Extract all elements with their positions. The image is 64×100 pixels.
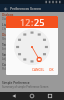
button[interactable]: Seek Bar bbox=[0, 52, 64, 62]
button[interactable]: CANCEL bbox=[30, 68, 47, 72]
staticText: : bbox=[31, 16, 34, 28]
button[interactable]: Dialogs bbox=[0, 12, 64, 22]
button[interactable]: Dialog Header bbox=[0, 32, 64, 42]
staticText: Dialogs bbox=[2, 13, 14, 17]
staticText: CANCEL bbox=[32, 68, 45, 72]
staticText: Color Picker bbox=[2, 63, 21, 67]
staticText: Simple Preference bbox=[2, 81, 30, 85]
staticText: Enter some text bbox=[2, 47, 22, 51]
staticText: OK bbox=[49, 68, 54, 72]
button[interactable]: OK bbox=[47, 68, 56, 72]
staticText: 12 bbox=[20, 16, 31, 28]
button[interactable]: Text Preference bbox=[0, 42, 64, 52]
button[interactable]: Home bbox=[28, 92, 36, 100]
staticText: Text Preference bbox=[2, 43, 26, 47]
staticText: Dialog Header bbox=[2, 33, 24, 37]
staticText: List Preference bbox=[2, 23, 25, 27]
staticText: Shows a header bbox=[2, 37, 22, 41]
button[interactable]: Simple Preference bbox=[0, 80, 64, 90]
button[interactable]: List Preference bbox=[0, 22, 64, 32]
staticText: 25 bbox=[34, 16, 45, 28]
staticText: Summary of simple Preference Screen bbox=[2, 85, 49, 89]
button[interactable]: Color Picker bbox=[0, 62, 64, 72]
button[interactable]: Back bbox=[10, 92, 18, 100]
button[interactable]: Navigate up bbox=[2, 5, 9, 12]
staticText: Adjust the value bbox=[2, 57, 22, 61]
button[interactable]: 12 bbox=[20, 16, 31, 28]
staticText: Dialog preferences bbox=[2, 17, 25, 21]
staticText: Seek Bar bbox=[2, 53, 16, 57]
staticText: Choose an item bbox=[2, 27, 21, 31]
button[interactable]: 25 bbox=[34, 16, 45, 28]
button[interactable]: Recents bbox=[46, 92, 54, 100]
staticText: Pick a colour bbox=[2, 67, 18, 71]
staticText: Preferences Screen bbox=[10, 6, 42, 11]
